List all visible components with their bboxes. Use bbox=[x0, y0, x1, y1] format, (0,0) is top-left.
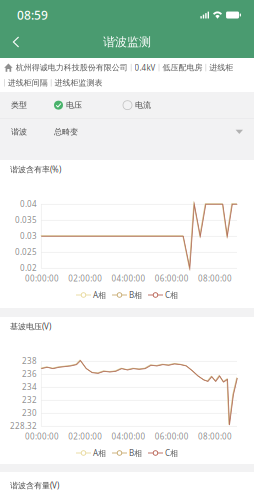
staticText: 进线柜监测表 bbox=[55, 78, 103, 88]
staticText: B相 bbox=[129, 448, 142, 458]
staticText: 0.02 bbox=[20, 263, 37, 273]
staticText: A相 bbox=[93, 448, 106, 458]
staticText: 06:00:00 bbox=[155, 273, 189, 284]
staticText: 电流 bbox=[135, 100, 151, 110]
staticText: 08:00:00 bbox=[198, 273, 232, 284]
staticText: 0.025 bbox=[15, 247, 37, 257]
button[interactable]: 进线柜 bbox=[209, 63, 233, 72]
staticText: 进线柜间隔 bbox=[8, 78, 48, 88]
staticText: 08:59 bbox=[17, 7, 48, 23]
staticText: 0.04 bbox=[20, 199, 37, 209]
staticText: 谐波 bbox=[11, 127, 27, 137]
staticText: 00:00:00 bbox=[25, 431, 59, 442]
button[interactable]: 电流 bbox=[123, 95, 185, 115]
button[interactable]: 0.4kV bbox=[135, 62, 156, 73]
staticText: 0.4kV bbox=[135, 62, 156, 73]
staticText: C相 bbox=[165, 290, 178, 300]
staticText: B相 bbox=[129, 290, 142, 300]
staticText: 232 bbox=[22, 395, 37, 405]
staticText: 238 bbox=[22, 356, 37, 366]
staticText: A相 bbox=[93, 290, 106, 300]
staticText: 电压 bbox=[66, 100, 82, 110]
button[interactable]: 进线柜间隔 bbox=[8, 78, 48, 88]
staticText: 类型 bbox=[11, 100, 27, 110]
button[interactable]: 电压 bbox=[54, 95, 123, 115]
staticText: 228.32 bbox=[10, 421, 37, 431]
staticText: 230 bbox=[22, 408, 37, 418]
staticText: 234 bbox=[22, 382, 37, 392]
staticText: 0.035 bbox=[15, 215, 37, 225]
staticText: 236 bbox=[22, 369, 37, 379]
button[interactable]: 返回 bbox=[2, 28, 30, 56]
staticText: 04:00:00 bbox=[111, 273, 145, 284]
staticText: 杭州得诚电力科技股份有限公司 bbox=[16, 63, 128, 72]
button[interactable]: 进线柜监测表 bbox=[55, 78, 103, 88]
staticText: 低压配电房 bbox=[162, 63, 202, 72]
button[interactable]: 谐波 bbox=[0, 119, 254, 145]
staticText: 02:00:00 bbox=[68, 431, 102, 442]
staticText: 进线柜 bbox=[209, 63, 233, 72]
staticText: 02:00:00 bbox=[68, 273, 102, 284]
button[interactable]: 低压配电房 bbox=[162, 63, 202, 72]
staticText: 00:00:00 bbox=[25, 273, 59, 284]
staticText: 谐波含有率(%) bbox=[10, 164, 61, 175]
staticText: 谐波监测 bbox=[103, 35, 151, 49]
staticText: 总畸变 bbox=[54, 127, 78, 137]
staticText: 谐波含有量(V) bbox=[10, 480, 59, 491]
staticText: 基波电压(V) bbox=[10, 321, 51, 332]
staticText: 04:00:00 bbox=[111, 431, 145, 442]
staticText: 08:00:00 bbox=[198, 431, 232, 442]
staticText: C相 bbox=[165, 448, 178, 458]
staticText: 0.03 bbox=[20, 231, 37, 241]
staticText: 06:00:00 bbox=[155, 431, 189, 442]
button[interactable]: 杭州得诚电力科技股份有限公司 bbox=[16, 63, 128, 72]
